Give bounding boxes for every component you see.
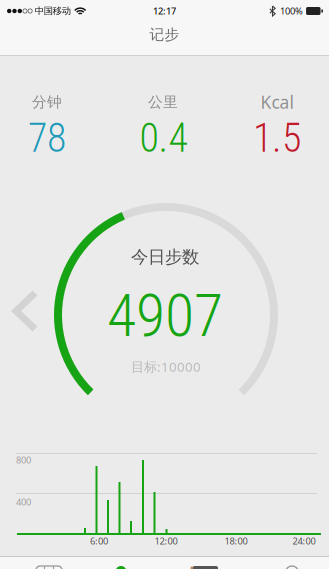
button[interactable]: Previous day <box>12 292 39 330</box>
staticText: 4907 <box>107 280 223 351</box>
staticText: 1.5 <box>253 115 301 161</box>
staticText: 24:00 <box>292 535 315 547</box>
staticText: 0.4 <box>139 115 187 161</box>
staticText: 记步 <box>149 25 179 43</box>
staticText: 12:17 <box>153 5 176 17</box>
button[interactable]: History <box>164 556 247 569</box>
staticText: 800 <box>16 454 31 466</box>
staticText: 78 <box>28 115 66 161</box>
staticText: 400 <box>16 496 31 508</box>
staticText: 分钟 <box>32 93 62 111</box>
button[interactable]: Pedometer <box>0 556 82 569</box>
staticText: 100% <box>280 5 303 17</box>
button[interactable]: Profile <box>247 556 329 569</box>
staticText: 中国移动 <box>35 5 71 17</box>
staticText: 目标:10000 <box>131 358 201 375</box>
staticText: 6:00 <box>90 535 108 547</box>
staticText: Kcal <box>260 90 293 113</box>
staticText: 18:00 <box>224 535 247 547</box>
button[interactable]: Today <box>82 556 164 569</box>
staticText: 今日步数 <box>131 246 199 268</box>
staticText: 12:00 <box>154 535 177 547</box>
staticText: 公里 <box>148 93 178 111</box>
